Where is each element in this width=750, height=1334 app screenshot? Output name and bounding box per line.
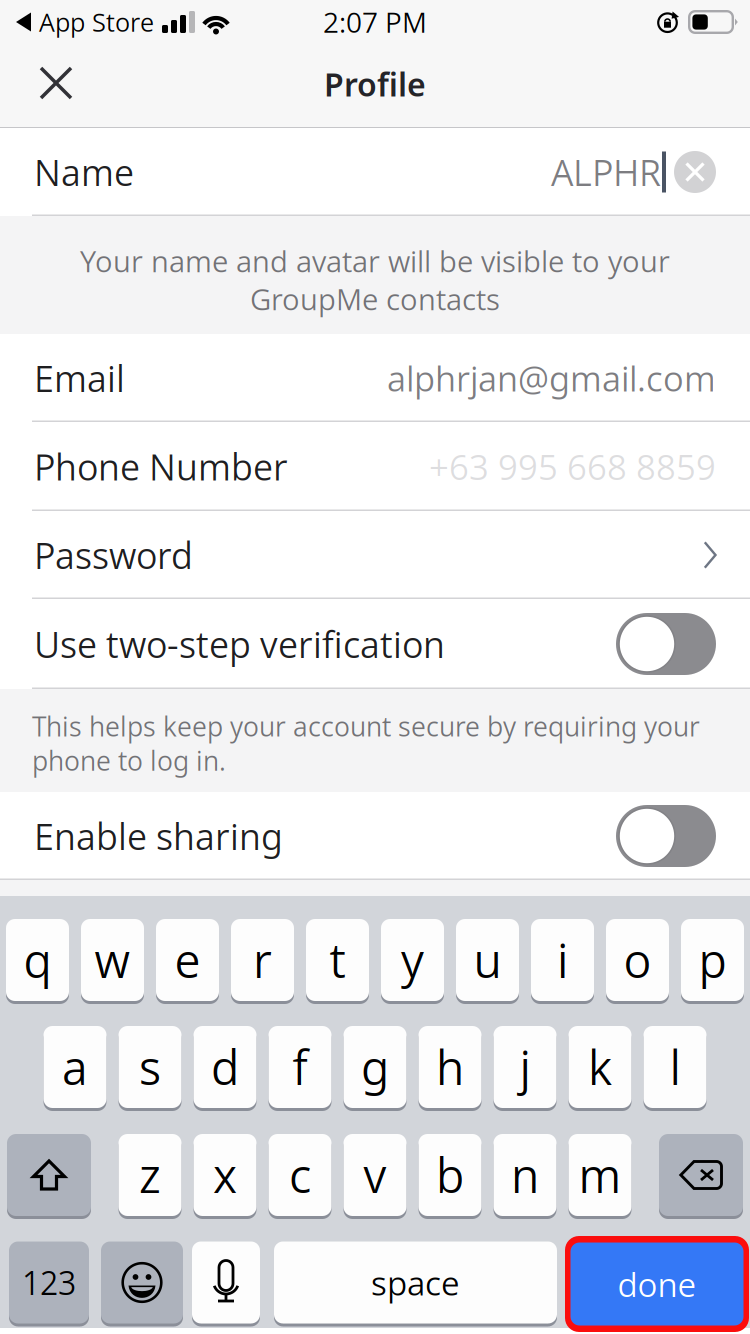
staticText: x [213,1143,237,1207]
staticText: Name [34,147,134,196]
button[interactable]: Dictation [192,1241,260,1326]
button[interactable]: v [343,1134,406,1219]
button[interactable]: Clear text [674,151,716,193]
staticText: l [669,1035,680,1099]
staticText: +63 995 668 8859 [429,443,716,490]
button[interactable]: Phone Number [0,422,750,511]
button[interactable]: u [456,919,519,1004]
staticText: Enable sharing [34,811,283,860]
button[interactable]: Use two-step verification [0,599,750,689]
button[interactable]: g [343,1026,406,1111]
button[interactable]: a [43,1026,106,1111]
button[interactable]: k [568,1026,631,1111]
staticText: done [617,1261,696,1307]
staticText: r [253,928,272,992]
button[interactable]: i [531,919,594,1004]
staticText: j [519,1035,530,1099]
button[interactable]: space [274,1241,557,1326]
button[interactable]: n [493,1134,556,1219]
staticText: v [363,1143,386,1207]
staticText: t [329,928,345,992]
button[interactable]: l [643,1026,706,1111]
button[interactable]: d [193,1026,256,1111]
button[interactable]: e [156,919,219,1004]
button[interactable]: Email [0,334,750,422]
staticText: b [436,1143,464,1207]
staticText: space [371,1260,460,1305]
button[interactable]: r [231,919,294,1004]
staticText: 2:07 PM [323,3,427,41]
button[interactable]: f [268,1026,331,1111]
button[interactable]: c [268,1134,331,1219]
button[interactable]: y [381,919,444,1004]
button[interactable]: t [306,919,369,1004]
button[interactable]: Close [0,44,112,128]
button[interactable]: z [118,1134,181,1219]
button[interactable]: h [418,1026,481,1111]
staticText: i [557,928,568,992]
staticText: Phone Number [34,442,288,491]
staticText: m [578,1143,621,1207]
staticText: Use two-step verification [34,619,445,668]
staticText: o [623,928,651,992]
button[interactable]: Password [0,511,750,599]
staticText: Profile [324,62,426,106]
staticText: n [511,1143,539,1207]
button[interactable]: Delete [659,1134,743,1219]
staticText: c [289,1143,311,1207]
staticText: 123 [22,1261,76,1304]
staticText: s [139,1035,161,1099]
button[interactable]: m [568,1134,631,1219]
staticText: a [62,1035,88,1099]
staticText: GroupMe contacts [250,279,500,319]
staticText: App Store [39,5,154,39]
button[interactable]: Emoji [101,1241,183,1326]
staticText: Email [34,353,125,402]
staticText: ALPHR [551,147,661,196]
staticText: d [211,1035,239,1099]
staticText: e [174,928,200,992]
staticText: y [401,928,424,992]
button[interactable]: j [493,1026,556,1111]
staticText: Your name and avatar will be visible to … [80,241,670,281]
button[interactable]: q [6,919,69,1004]
staticText: This helps keep your account secure by r… [32,708,700,744]
button[interactable]: w [81,919,144,1004]
staticText: w [94,928,130,992]
button[interactable]: s [118,1026,181,1111]
staticText: phone to log in. [32,742,226,779]
staticText: f [292,1035,307,1099]
staticText: u [473,928,501,992]
button[interactable]: 123 [9,1241,89,1326]
staticText: alphrjan@gmail.com [387,354,716,402]
button[interactable]: Shift [7,1134,91,1219]
staticText: p [698,928,726,992]
staticText: h [436,1035,464,1099]
button[interactable]: Name [0,128,750,216]
button[interactable]: p [681,919,744,1004]
staticText: g [361,1035,389,1099]
button[interactable]: Enable sharing [0,792,750,880]
staticText: Password [34,530,193,579]
staticText: q [23,928,51,992]
button[interactable]: done [565,1236,749,1332]
staticText: z [139,1143,161,1207]
staticText: k [588,1035,612,1099]
button[interactable]: b [418,1134,481,1219]
button[interactable]: x [193,1134,256,1219]
button[interactable]: o [606,919,669,1004]
